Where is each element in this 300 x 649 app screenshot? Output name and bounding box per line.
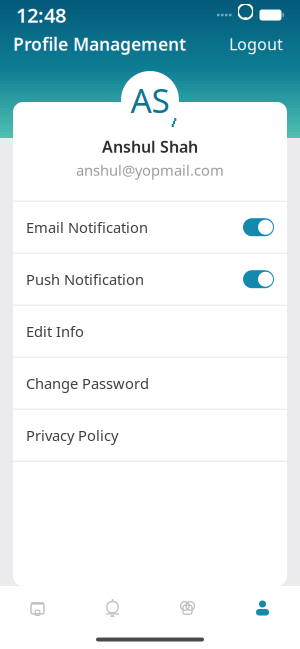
button[interactable]: Profile xyxy=(225,588,300,628)
staticText: Change Password xyxy=(26,373,149,393)
staticText: Privacy Policy xyxy=(26,425,118,445)
staticText: Profile Management xyxy=(13,32,186,55)
button[interactable]: Favorites xyxy=(150,588,225,628)
button[interactable]: Email Notification xyxy=(13,202,287,253)
staticText: Push Notification xyxy=(26,269,144,289)
button[interactable]: Notifications xyxy=(75,588,150,628)
button[interactable]: Push Notification xyxy=(13,254,287,305)
button[interactable]: Logout xyxy=(225,27,287,61)
button[interactable]: Home xyxy=(0,588,75,628)
staticText: Anshul Shah xyxy=(102,136,198,157)
staticText: 12:48 xyxy=(16,2,66,28)
button[interactable]: Privacy Policy xyxy=(13,410,287,461)
staticText: Email Notification xyxy=(26,217,148,237)
button[interactable]: Change Password xyxy=(13,358,287,409)
staticText: anshul@yopmail.com xyxy=(76,160,224,180)
staticText: Edit Info xyxy=(26,321,84,341)
staticText: AS xyxy=(130,78,169,122)
button[interactable]: Edit Info xyxy=(13,306,287,357)
staticText: Logout xyxy=(229,33,283,55)
